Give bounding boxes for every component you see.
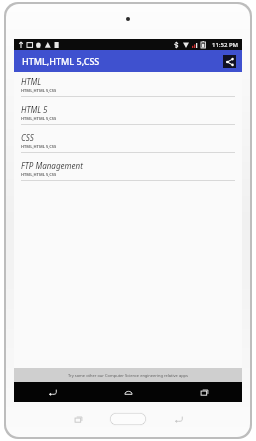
staticText: Try some other our Computer Science engi… bbox=[68, 373, 188, 378]
staticText: CSS bbox=[21, 132, 34, 143]
button[interactable]: FTP Management bbox=[14, 156, 242, 184]
button[interactable]: Try some other our Computer Science engi… bbox=[14, 368, 242, 382]
staticText: HTML 5 bbox=[21, 104, 48, 115]
staticText: HTML,HTML 5,CSS bbox=[21, 172, 57, 177]
staticText: FTP Management bbox=[21, 160, 83, 171]
button[interactable]: Recents bbox=[166, 382, 242, 402]
staticText: HTML,HTML 5,CSS bbox=[21, 116, 57, 121]
staticText: HTML,HTML 5,CSS bbox=[21, 144, 57, 149]
staticText: HTML,HTML 5,CSS bbox=[22, 55, 100, 67]
staticText: HTML bbox=[21, 76, 41, 87]
button[interactable]: HTML bbox=[14, 72, 242, 100]
button[interactable]: Home bbox=[90, 382, 166, 402]
button[interactable]: Share bbox=[223, 55, 236, 68]
button[interactable]: HTML 5 bbox=[14, 100, 242, 128]
staticText: HTML,HTML 5,CSS bbox=[21, 88, 57, 93]
button[interactable]: CSS bbox=[14, 128, 242, 156]
staticText: 11:52 PM bbox=[212, 41, 239, 49]
button[interactable]: Back bbox=[14, 382, 90, 402]
